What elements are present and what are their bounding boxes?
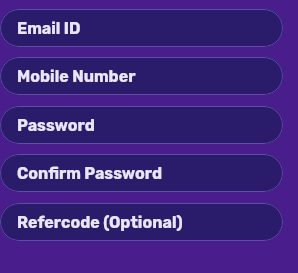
button[interactable]: Password <box>0 106 283 144</box>
staticText: Email ID <box>17 19 81 38</box>
staticText: Password <box>17 116 95 135</box>
button[interactable]: Refercode (Optional) <box>0 203 283 241</box>
button[interactable]: Mobile Number <box>0 57 283 95</box>
button[interactable]: Confirm Password <box>0 154 283 192</box>
staticText: Mobile Number <box>17 67 136 86</box>
staticText: Confirm Password <box>17 164 163 183</box>
staticText: Refercode (Optional) <box>17 213 183 232</box>
button[interactable]: Email ID <box>0 9 283 47</box>
